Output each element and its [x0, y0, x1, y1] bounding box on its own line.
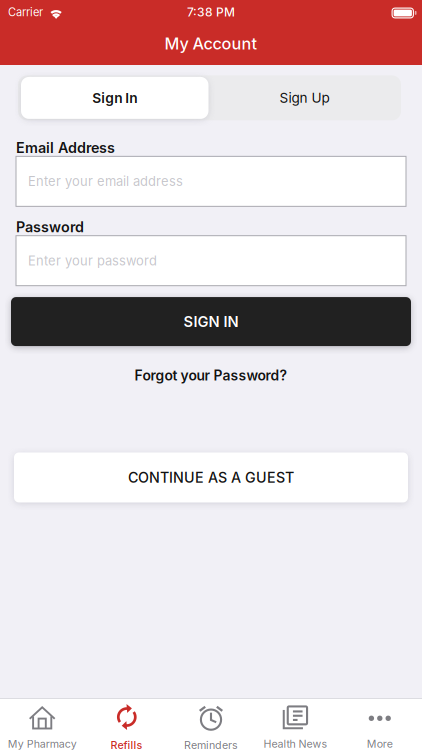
staticText: Sign Up — [279, 90, 329, 106]
button[interactable]: My Pharmacy — [0, 699, 84, 750]
staticText: Enter your password — [28, 253, 157, 268]
button[interactable]: Health News — [253, 699, 338, 750]
staticText: My Account — [164, 34, 257, 53]
button[interactable]: Reminders — [169, 699, 253, 750]
staticText: Email Address — [16, 139, 115, 156]
staticText: Enter your email address — [28, 173, 183, 189]
staticText: 7:38 PM — [187, 5, 235, 19]
button[interactable]: Refills — [84, 699, 169, 750]
staticText: Password — [16, 218, 84, 236]
staticText: My Pharmacy — [8, 737, 77, 750]
staticText: Sign In — [92, 90, 137, 106]
button[interactable]: Sign Up — [208, 77, 400, 119]
button[interactable]: CONTINUE AS A GUEST — [14, 452, 408, 502]
button[interactable]: More — [338, 699, 422, 750]
staticText: Refills — [111, 739, 143, 750]
button[interactable]: Sign In — [21, 77, 208, 119]
staticText: CONTINUE AS A GUEST — [128, 469, 294, 486]
staticText: Carrier — [8, 5, 43, 19]
button[interactable]: Forgot your Password? — [0, 367, 422, 384]
staticText: More — [367, 737, 393, 750]
staticText: Health News — [263, 737, 327, 750]
staticText: Reminders — [184, 738, 238, 750]
staticText: Forgot your Password? — [134, 367, 287, 384]
staticText: SIGN IN — [183, 313, 238, 330]
button[interactable]: SIGN IN — [11, 297, 411, 346]
